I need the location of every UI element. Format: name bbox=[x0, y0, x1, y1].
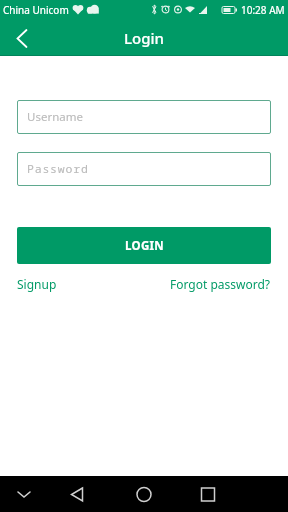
button[interactable]: Signup bbox=[17, 272, 57, 296]
staticText: Username bbox=[27, 109, 83, 125]
staticText: LOGIN bbox=[125, 238, 164, 254]
staticText: 10:28 AM bbox=[241, 3, 285, 17]
button[interactable]: Password bbox=[17, 152, 271, 186]
staticText: Login bbox=[124, 28, 164, 48]
staticText: China Unicom bbox=[3, 3, 69, 17]
button[interactable]: LOGIN bbox=[17, 227, 271, 264]
button[interactable] bbox=[8, 24, 36, 52]
staticText: Signup bbox=[17, 276, 57, 292]
staticText: Forgot password? bbox=[170, 276, 271, 292]
button[interactable] bbox=[72, 476, 144, 512]
button[interactable]: Forgot password? bbox=[170, 272, 271, 296]
button[interactable] bbox=[0, 476, 72, 512]
button[interactable]: Username bbox=[17, 100, 271, 134]
staticText: Password bbox=[27, 161, 89, 177]
button[interactable] bbox=[144, 476, 216, 512]
